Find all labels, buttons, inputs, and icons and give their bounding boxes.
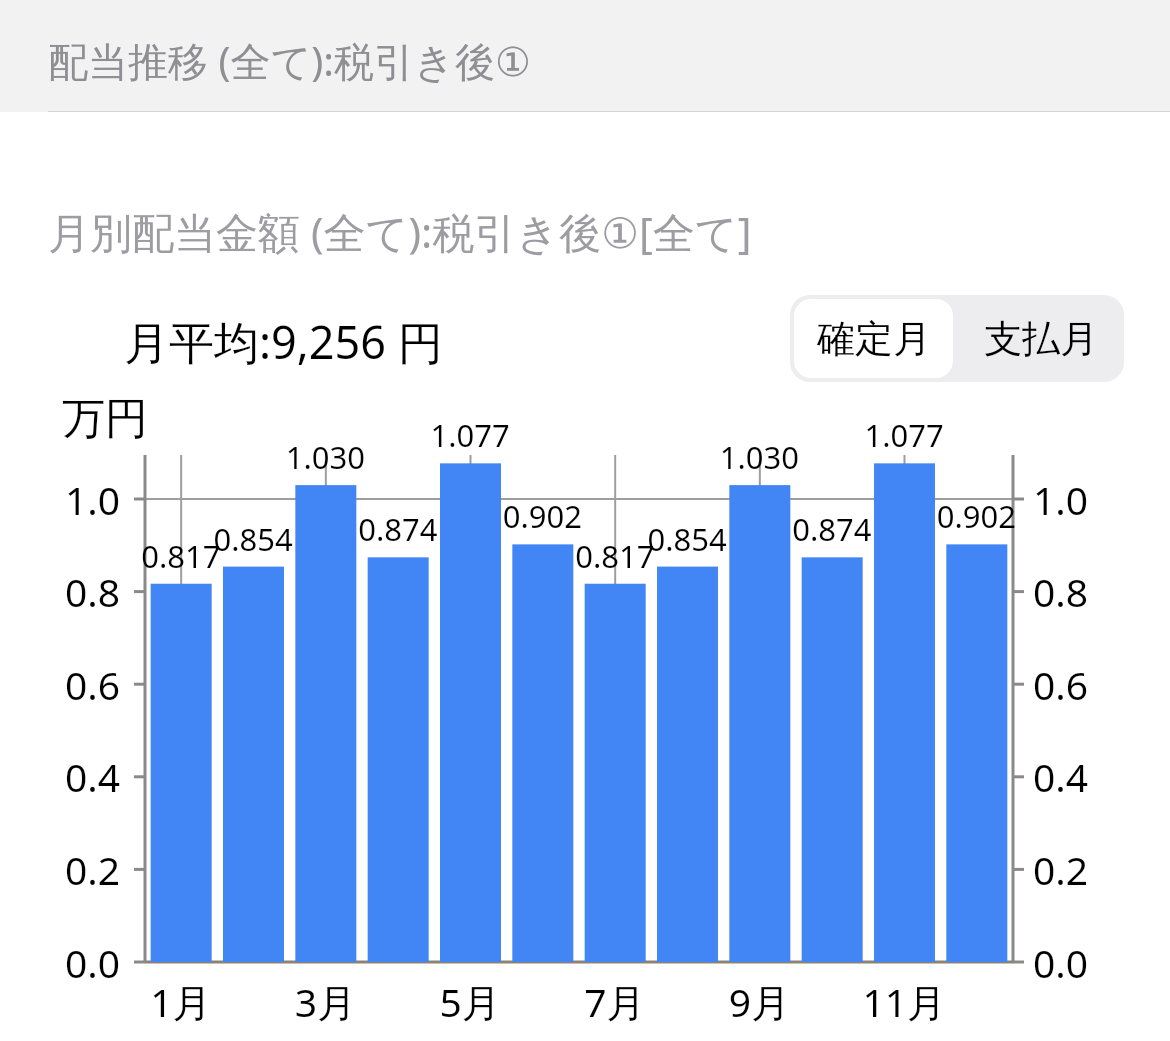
staticText: 配当推移 (全て):税引き後①	[48, 33, 531, 88]
staticText: 月別配当金額 (全て):税引き後①[全て]	[48, 203, 752, 260]
button[interactable]: 確定月	[794, 299, 953, 378]
staticText: 確定月	[817, 315, 931, 363]
staticText: 万円	[62, 392, 148, 446]
staticText: 月平均:9,256 円	[124, 311, 443, 372]
button[interactable]: 支払月	[957, 295, 1124, 382]
staticText: 支払月	[984, 315, 1098, 363]
